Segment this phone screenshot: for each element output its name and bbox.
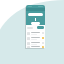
button[interactable] <box>27 46 44 48</box>
button[interactable]: Primary action <box>31 22 40 25</box>
button[interactable]: Toolbar <box>26 5 45 48</box>
button[interactable] <box>27 31 44 35</box>
button[interactable]: Search <box>28 13 43 16</box>
button[interactable] <box>27 36 44 40</box>
button[interactable]: Sort <box>37 26 44 29</box>
button[interactable] <box>27 41 44 45</box>
